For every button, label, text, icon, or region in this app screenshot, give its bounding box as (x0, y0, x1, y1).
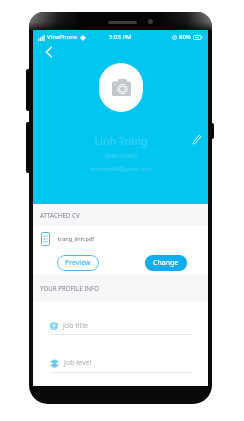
staticText: 80% (179, 33, 191, 41)
staticText: 5:03 PM (109, 33, 132, 41)
button[interactable]: Change profile photo (99, 63, 143, 112)
button[interactable]: Preview (57, 255, 99, 271)
staticText: trang_linh.pdf (58, 235, 95, 242)
staticText: Job level (64, 358, 92, 368)
staticText: Change (153, 258, 179, 268)
staticText: linhtrang98@gmail.com (90, 165, 151, 172)
staticText: ATTACHED CV (40, 211, 80, 219)
button[interactable]: Edit profile (188, 131, 205, 148)
button[interactable]: Change (145, 255, 187, 271)
staticText: 0986000000 (105, 152, 137, 160)
staticText: VinaPhone (47, 33, 78, 41)
staticText: Preview (65, 258, 91, 268)
staticText: Linh Trang (94, 134, 148, 148)
button[interactable]: Back (39, 42, 59, 62)
staticText: YOUR PROFILE INFO (40, 284, 100, 292)
staticText: Job title (63, 321, 88, 331)
